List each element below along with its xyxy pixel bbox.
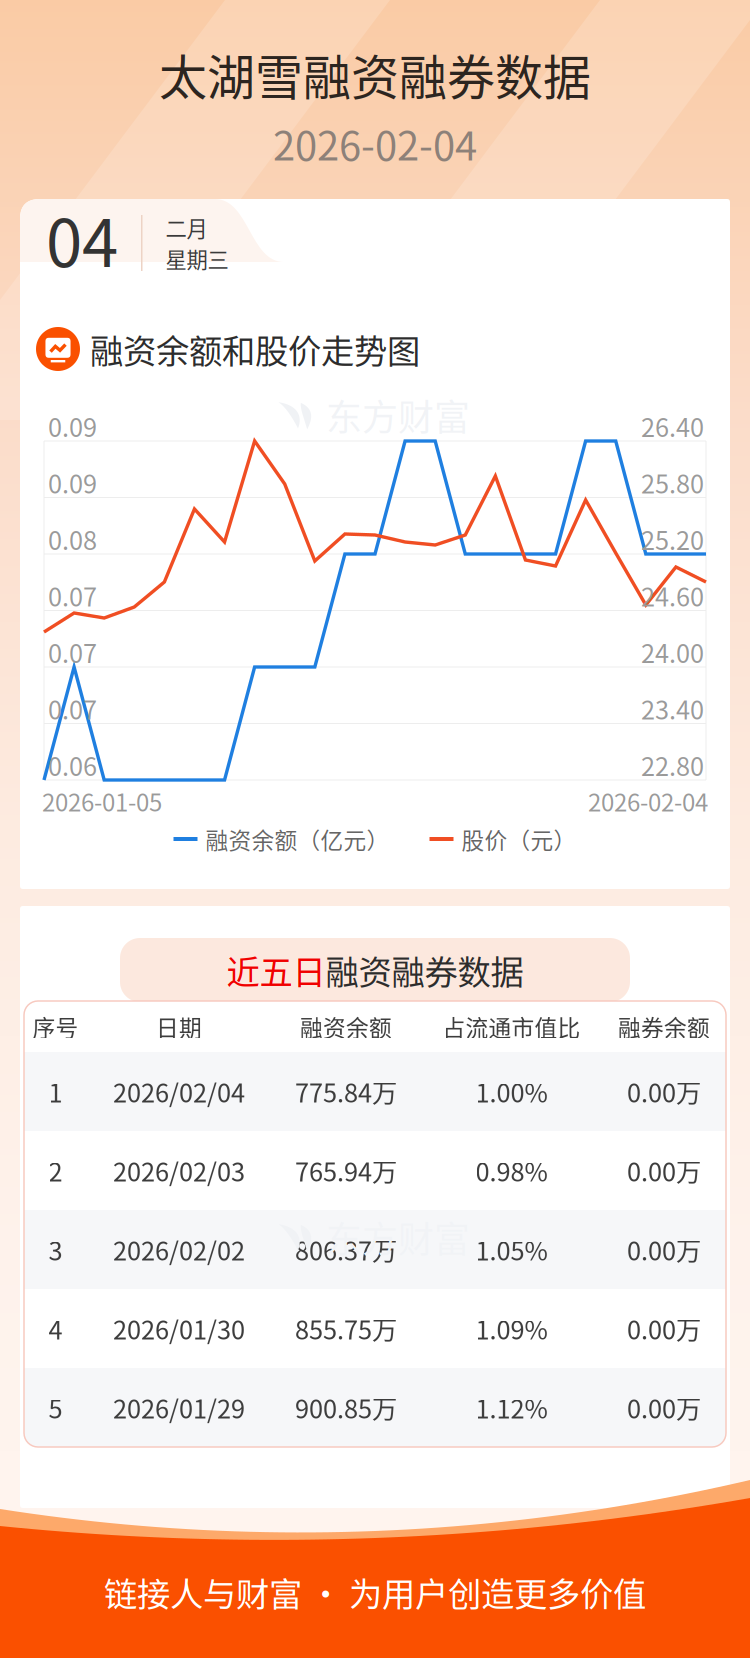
staticText: 22.80 [641, 747, 704, 783]
staticText: 2026/01/30 [113, 1310, 245, 1347]
staticText: 806.37万 [295, 1231, 397, 1268]
staticText: 765.94万 [295, 1152, 397, 1189]
staticText: 3 [48, 1231, 62, 1268]
staticText: 近五日 [226, 946, 325, 994]
staticText: 东方财富 [326, 389, 470, 441]
staticText: 融资融券数据 [325, 946, 523, 994]
staticText: 24.00 [641, 634, 704, 670]
staticText: 26.40 [641, 408, 704, 444]
staticText: 星期三 [165, 243, 228, 274]
staticText: 0.07 [48, 690, 97, 727]
staticText: 日期 [156, 1010, 202, 1043]
staticText: 2026/02/03 [113, 1152, 245, 1189]
staticText: 2026/02/04 [113, 1073, 245, 1110]
staticText: 链接人与财富 · 为用户创造更多价值 [104, 1568, 646, 1616]
staticText: 0.07 [48, 577, 97, 614]
staticText: 2026-02-04 [588, 784, 708, 818]
staticText: 23.40 [641, 690, 704, 727]
staticText: 1.09% [475, 1310, 547, 1347]
staticText: 2026-02-04 [273, 114, 477, 172]
staticText: 900.85万 [295, 1389, 397, 1426]
staticText: 775.84万 [295, 1073, 397, 1110]
staticText: 0.00万 [627, 1310, 701, 1347]
staticText: 2026/01/29 [113, 1389, 245, 1426]
staticText: 0.08 [48, 521, 97, 557]
staticText: 融资余额 [300, 1010, 392, 1043]
staticText: 太湖雪融资融券数据 [159, 39, 591, 109]
staticText: 0.00万 [627, 1389, 701, 1426]
staticText: 二月 [165, 212, 207, 243]
staticText: 4 [48, 1310, 62, 1347]
staticText: 0.09 [48, 408, 97, 444]
staticText: 1.00% [475, 1073, 547, 1110]
staticText: 融资余额和股价走势图 [90, 325, 420, 373]
staticText: 0.09 [48, 464, 97, 501]
staticText: 融券余额 [618, 1010, 710, 1043]
staticText: 1 [48, 1073, 62, 1110]
staticText: 25.80 [641, 464, 704, 501]
staticText: 融资余额（亿元） [205, 823, 389, 855]
staticText: 24.60 [641, 577, 704, 614]
staticText: 5 [48, 1389, 62, 1426]
staticText: 东方财富 [326, 1211, 470, 1263]
staticText: 2026-01-05 [42, 784, 162, 818]
staticText: 2026/02/02 [113, 1231, 245, 1268]
staticText: 占流通市值比 [442, 1010, 580, 1043]
staticText: 25.20 [641, 521, 704, 557]
staticText: 0.06 [48, 747, 97, 783]
staticText: 0.00万 [627, 1152, 701, 1189]
staticText: 1.05% [475, 1231, 547, 1268]
staticText: 855.75万 [295, 1310, 397, 1347]
staticText: 0.07 [48, 634, 97, 670]
staticText: 0.00万 [627, 1231, 701, 1268]
staticText: 2 [48, 1152, 62, 1189]
staticText: 序号 [32, 1010, 78, 1043]
staticText: 04 [46, 191, 118, 286]
staticText: 1.12% [475, 1389, 547, 1426]
staticText: 股价（元） [461, 823, 576, 855]
staticText: 0.00万 [627, 1073, 701, 1110]
staticText: 0.98% [475, 1152, 547, 1189]
